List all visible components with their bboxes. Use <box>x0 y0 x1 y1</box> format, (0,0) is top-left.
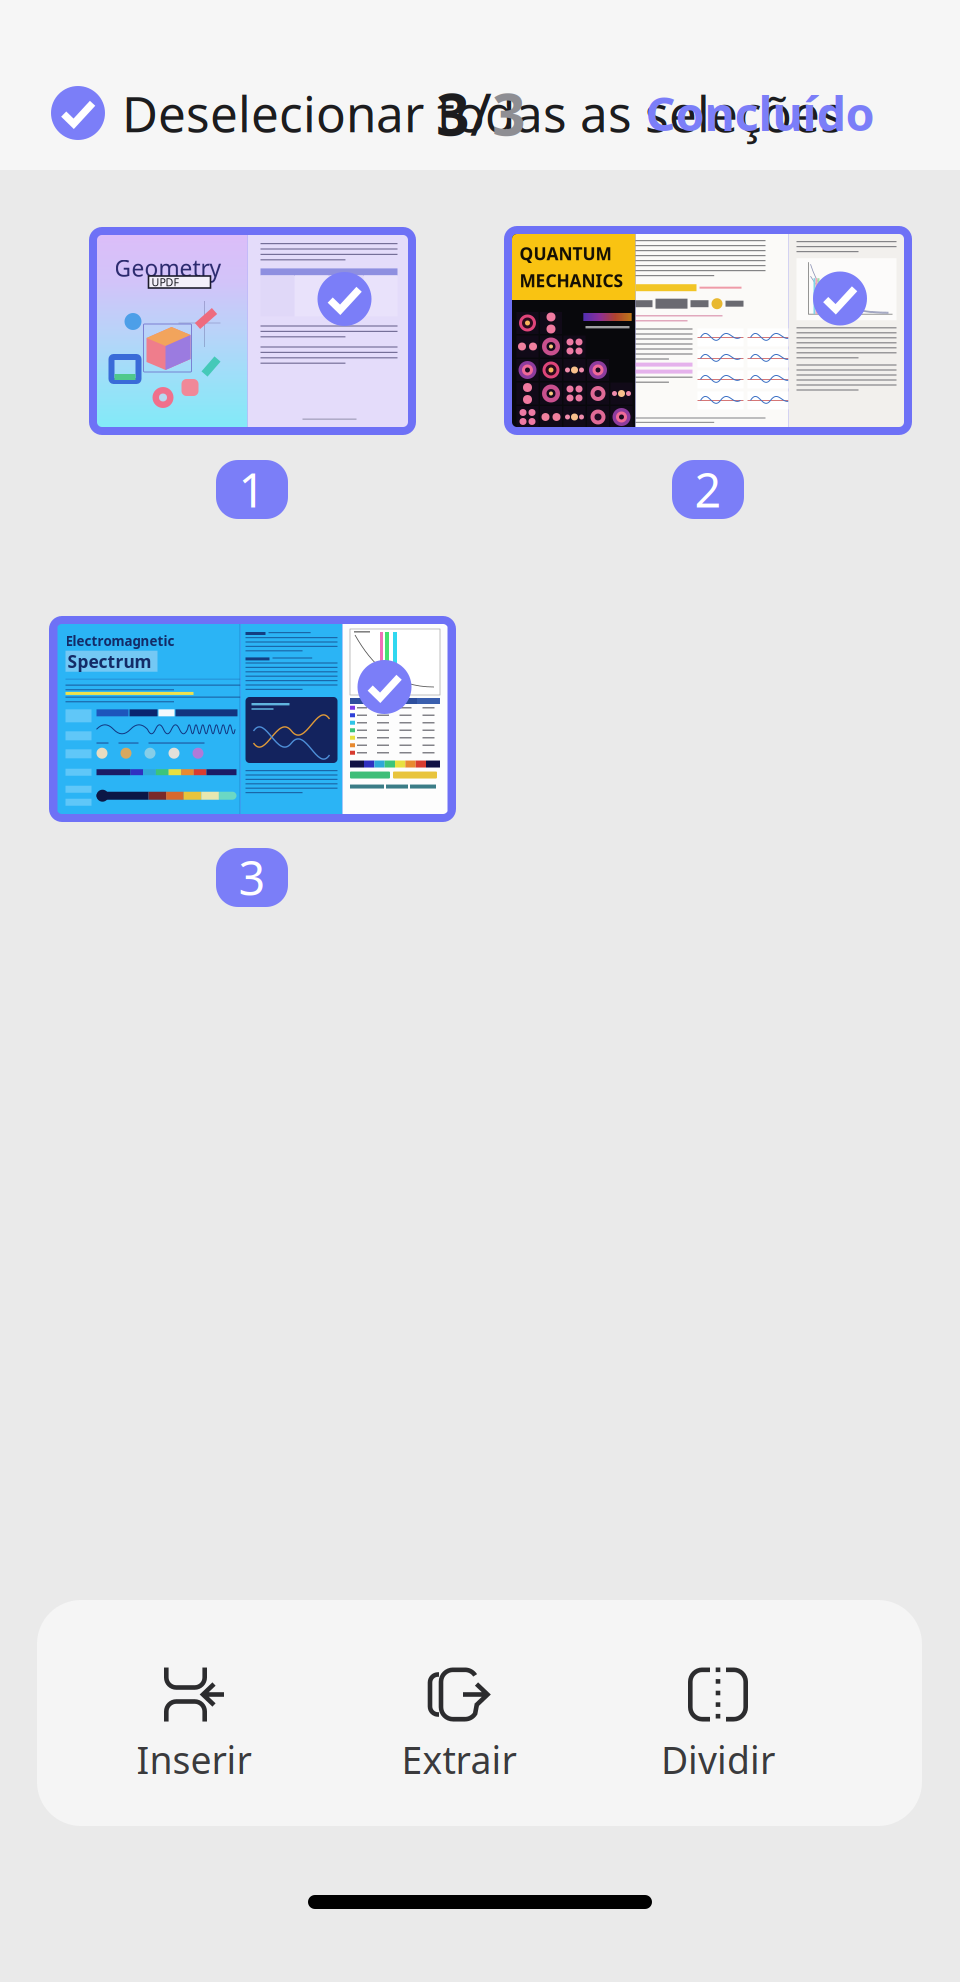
staticText: MECHANICS <box>519 269 623 292</box>
staticText: 2 <box>694 458 721 520</box>
staticText: 3 <box>492 74 526 152</box>
staticText: 3 <box>436 74 470 152</box>
button[interactable]: Electromagnetic <box>49 616 456 822</box>
staticText: Extrair <box>401 1735 516 1784</box>
staticText: Spectrum <box>67 650 151 673</box>
staticText: QUANTUM <box>519 242 611 265</box>
button[interactable]: Geometry <box>89 227 416 435</box>
button[interactable]: Extrair <box>359 1611 559 1837</box>
staticText: Electromagnetic <box>65 632 174 650</box>
button[interactable]: Dividir <box>618 1611 818 1837</box>
button[interactable]: Inserir <box>94 1611 294 1837</box>
staticText: Deselecionar todas as seleções <box>122 80 844 146</box>
staticText: UPDF <box>151 275 179 289</box>
staticText: Dividir <box>661 1735 775 1784</box>
staticText: 1 <box>238 458 265 520</box>
staticText: 3 <box>238 846 265 908</box>
button[interactable]: QUANTUM <box>504 226 912 435</box>
button[interactable]: Deselecionar todas as seleções <box>51 86 122 140</box>
staticText: Geometry <box>114 253 221 283</box>
staticText: / <box>470 74 492 152</box>
staticText: Inserir <box>136 1735 251 1784</box>
staticText: Concluído <box>645 82 874 144</box>
